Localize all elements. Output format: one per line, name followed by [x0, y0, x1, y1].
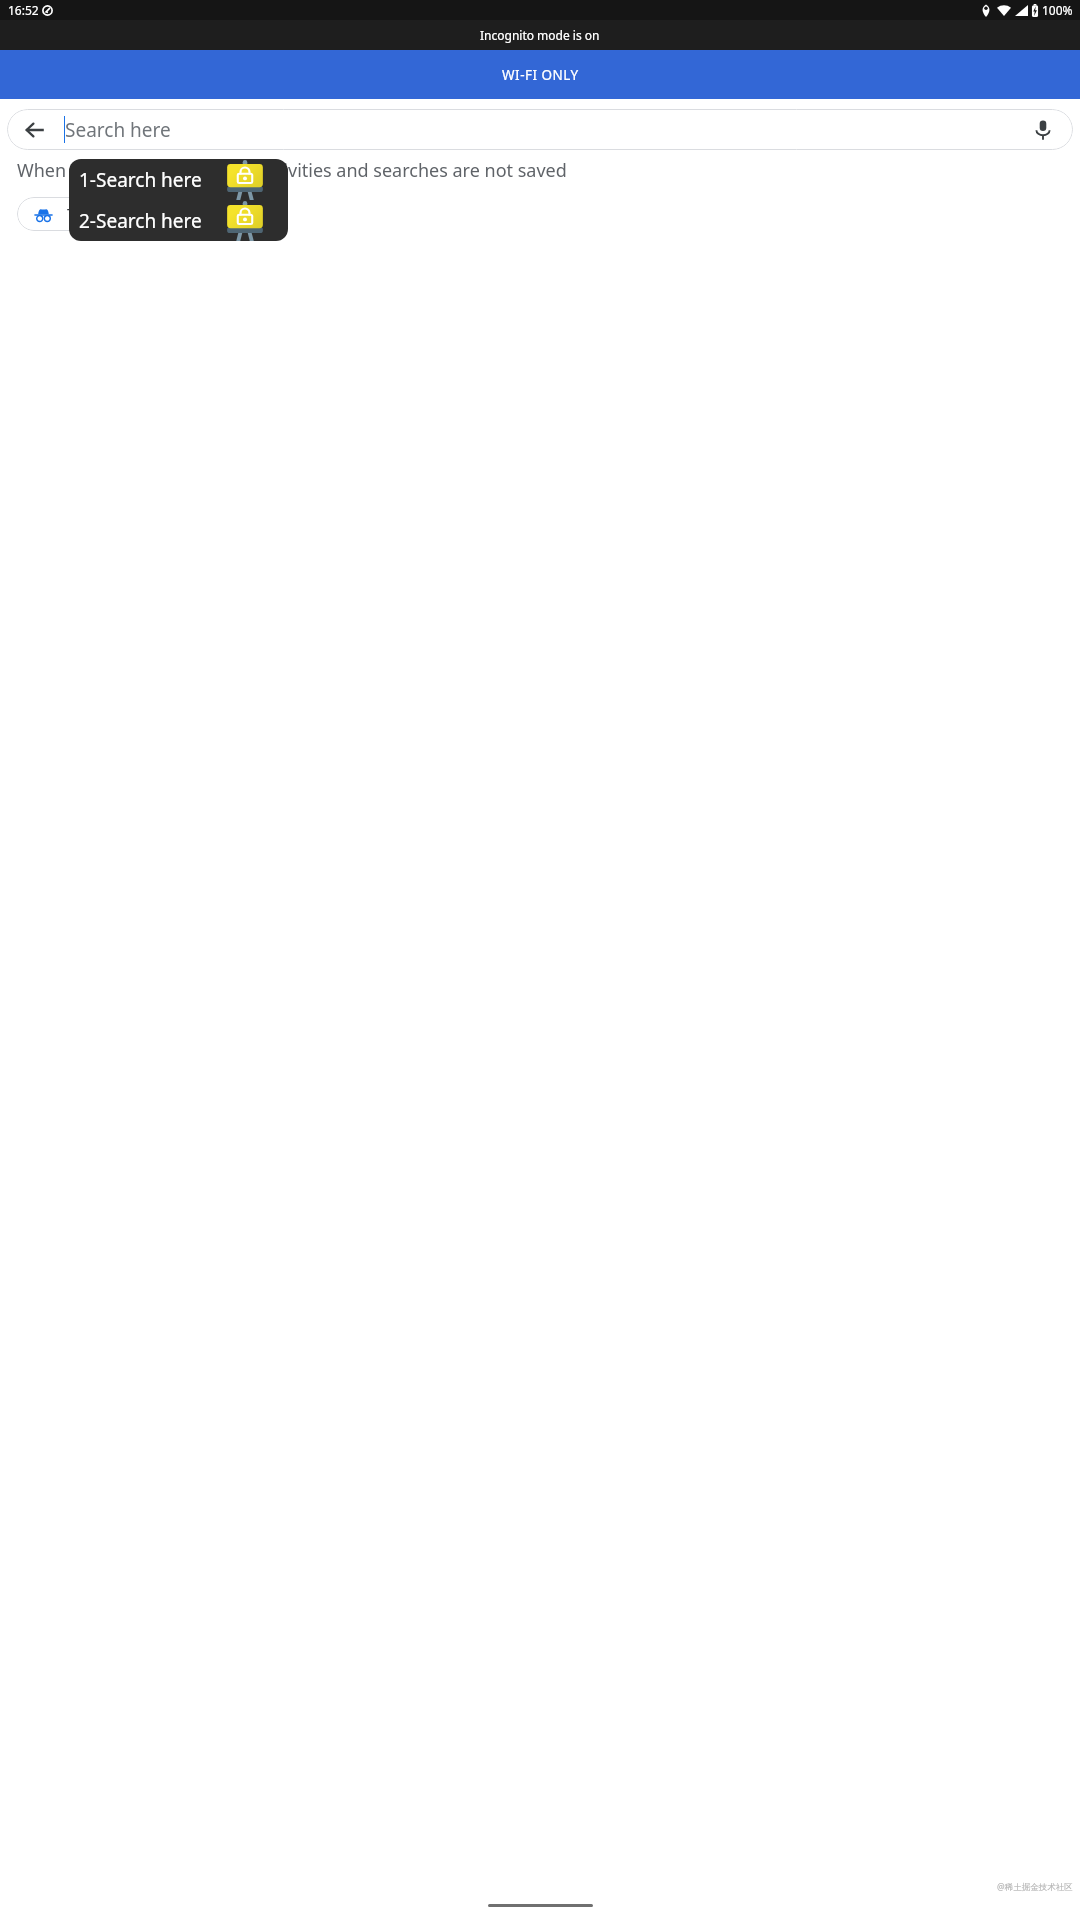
- button[interactable]: Back: [7, 109, 1073, 150]
- staticText: WI-FI ONLY: [502, 66, 579, 84]
- button[interactable]: Turn off: [17, 197, 148, 231]
- button[interactable]: Voice search: [1031, 118, 1055, 142]
- staticText: 16:52: [8, 2, 39, 18]
- staticText: Search here: [65, 117, 171, 143]
- staticText: Turn off: [67, 203, 131, 226]
- button[interactable]: 2-Search here: [69, 200, 288, 241]
- button[interactable]: WI-FI ONLY: [0, 50, 1080, 99]
- button[interactable]: 1-Search here: [69, 159, 288, 200]
- staticText: When incognito mode is on, activities an…: [17, 158, 567, 183]
- staticText: 2-Search here: [79, 208, 202, 234]
- button[interactable]: Back: [23, 118, 47, 142]
- staticText: 100%: [1042, 2, 1073, 18]
- staticText: @稀土掘金技术社区: [997, 1881, 1073, 1893]
- staticText: Incognito mode is on: [480, 27, 600, 43]
- staticText: 1-Search here: [79, 167, 202, 193]
